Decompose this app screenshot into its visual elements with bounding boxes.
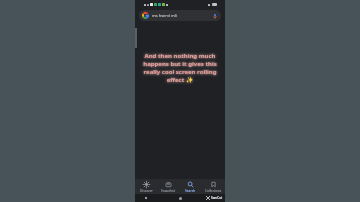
button[interactable]: Home bbox=[179, 197, 182, 200]
staticText: Search bbox=[185, 189, 196, 192]
button[interactable]: ms hserví mli bbox=[139, 10, 221, 21]
button[interactable]: Collections bbox=[202, 179, 225, 194]
staticText: ms hserví mli bbox=[152, 13, 212, 18]
staticText: And then nothing much happens but it giv… bbox=[138, 52, 222, 84]
staticText: Snapshot bbox=[161, 189, 176, 192]
staticText: Discover bbox=[140, 189, 153, 192]
staticText: SamCut bbox=[211, 196, 223, 200]
button[interactable]: Search bbox=[179, 179, 202, 194]
button[interactable]: Discover bbox=[135, 179, 157, 194]
staticText: Collections bbox=[205, 189, 222, 192]
button[interactable]: Snapshot bbox=[157, 179, 179, 194]
